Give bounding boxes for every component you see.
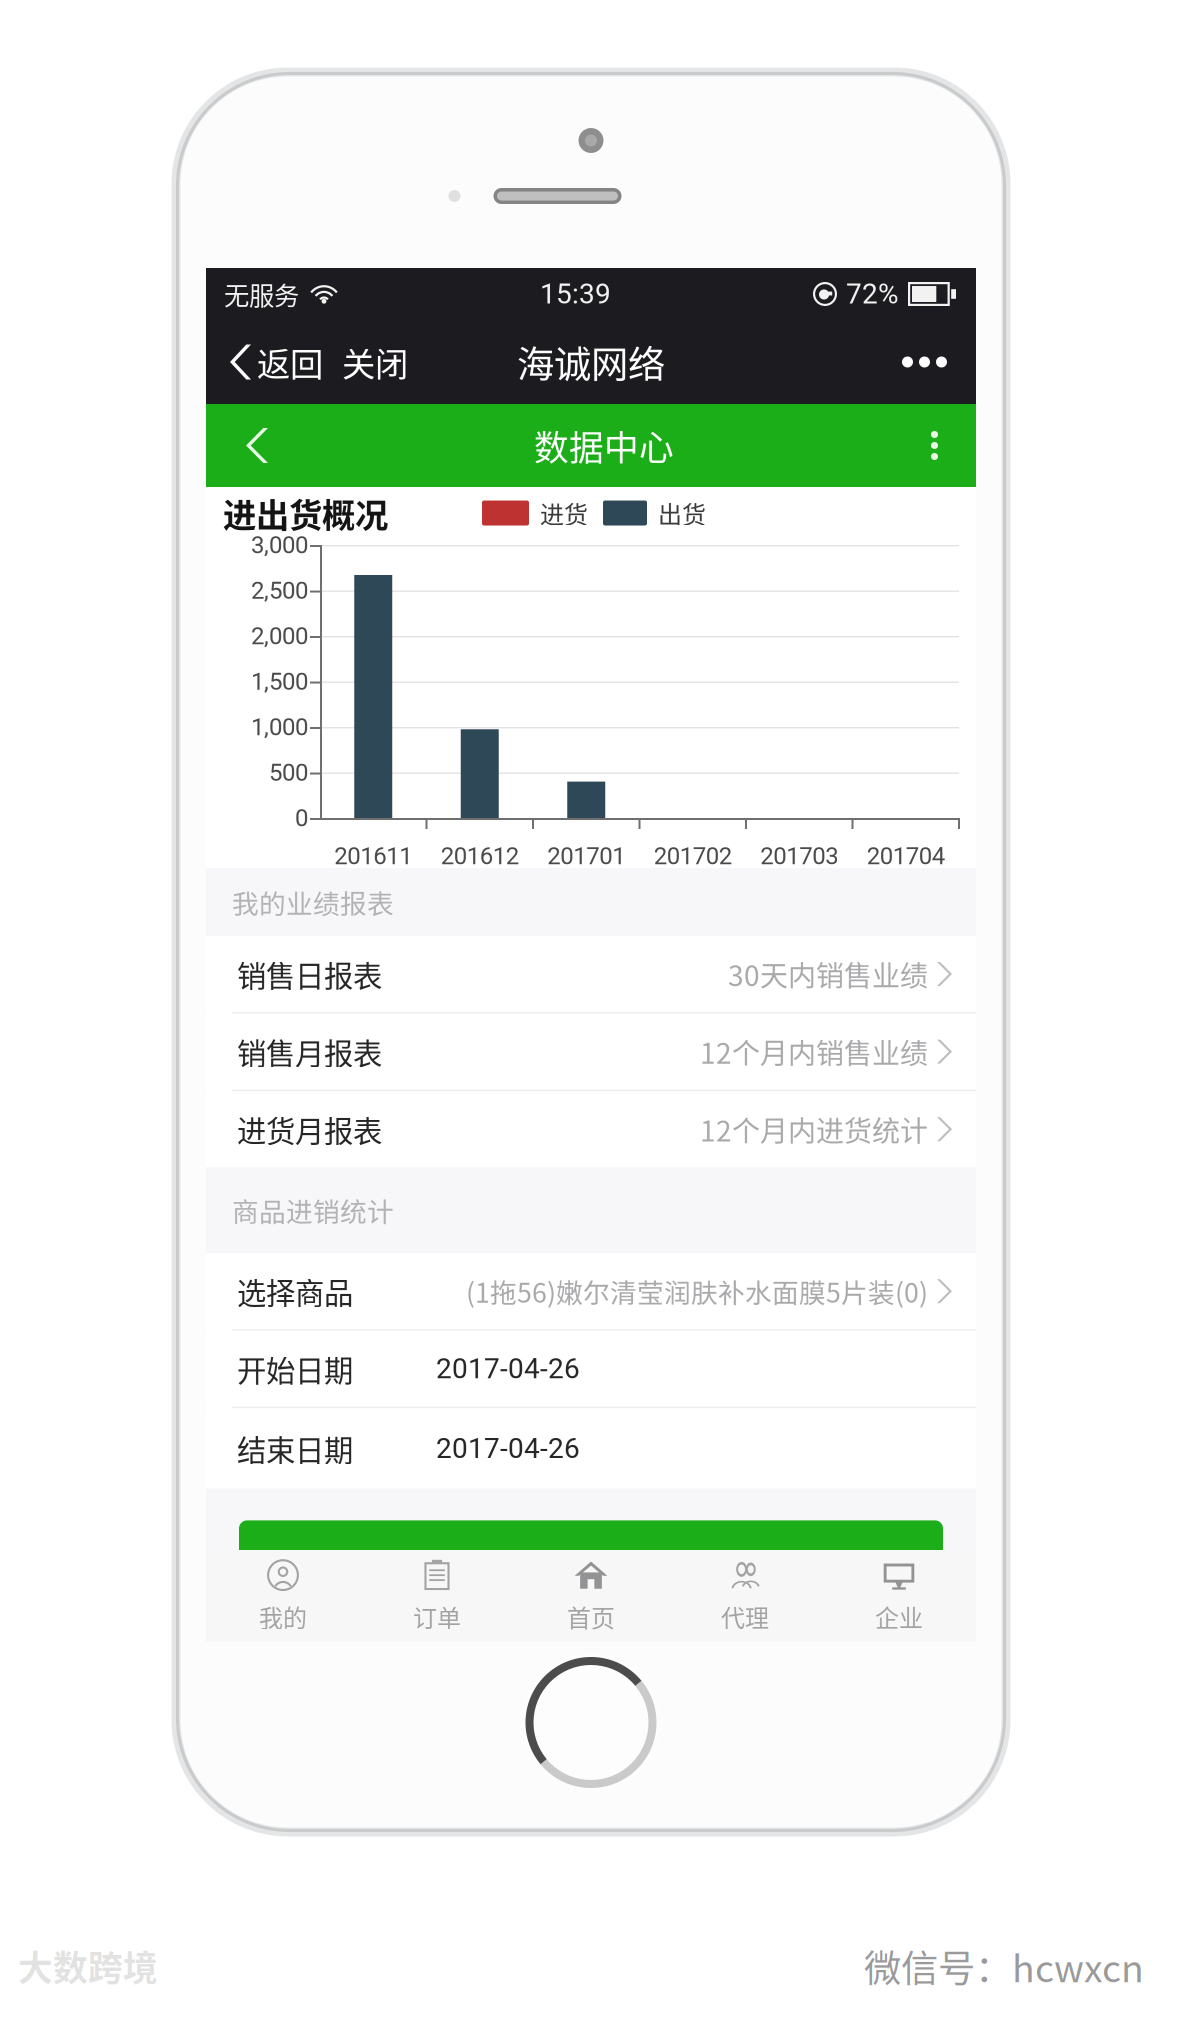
button[interactable]: Back [206,404,294,487]
staticText: 12个月内销售业绩 [700,1031,928,1072]
staticText: 201701 [547,842,625,870]
staticText: 销售日报表 [237,953,382,995]
staticText: 30天内销售业绩 [728,954,928,994]
button[interactable]: 关闭 [333,320,422,404]
staticText: 出货 [658,496,706,530]
button[interactable]: More [873,320,976,404]
staticText: 进货月报表 [237,1108,382,1150]
button[interactable] [206,1520,976,1584]
staticText: 201703 [760,842,838,870]
staticText: 大数跨境 [18,1941,158,1991]
staticText: 我的 [259,1599,307,1634]
staticText: 15:39 [540,278,611,310]
staticText: (1拖56)嫩尔清莹润肤补水面膜5片装(0) [466,1272,928,1310]
button[interactable]: 开始日期 [206,1331,976,1407]
button[interactable]: 返回 [206,320,333,404]
button[interactable]: 销售月报表 [206,1014,976,1090]
staticText: 进出货概况 [223,489,388,537]
staticText: 我的业绩报表 [232,883,394,921]
staticText: 201611 [334,842,412,870]
staticText: 首页 [567,1599,615,1634]
staticText: 2017-04-26 [436,1352,580,1385]
staticText: 开始日期 [237,1348,353,1390]
staticText: 选择商品 [237,1270,353,1312]
button[interactable]: 我的 [206,1550,360,1642]
staticText: 3,000 [251,531,308,559]
button[interactable]: 订单 [360,1550,514,1642]
staticText: 72% [846,278,899,310]
staticText: 返回 [257,338,323,386]
staticText: 12个月内进货统计 [700,1109,928,1149]
staticText: 2,500 [251,576,308,604]
button[interactable]: 代理 [668,1550,822,1642]
staticText: 数据中心 [534,420,674,471]
staticText: 201702 [654,842,732,870]
staticText: 进货 [540,496,588,530]
button[interactable]: Menu [893,404,976,487]
staticText: 201704 [867,842,945,870]
button[interactable]: 企业 [822,1550,976,1642]
staticText: 1,500 [251,667,308,695]
button[interactable]: 进货月报表 [206,1091,976,1167]
staticText: 结束日期 [237,1427,353,1470]
staticText: 微信号：hcwxcn [864,1939,1144,1993]
staticText: 订单 [413,1599,461,1634]
button[interactable]: 首页 [514,1550,668,1642]
button[interactable]: 销售日报表 [206,936,976,1012]
staticText: 企业 [875,1599,923,1634]
staticText: 2017-04-26 [436,1432,580,1465]
staticText: 2,000 [251,622,308,650]
staticText: 500 [269,758,308,786]
staticText: 关闭 [342,338,408,386]
staticText: 商品进销统计 [232,1191,394,1229]
staticText: 销售月报表 [237,1030,382,1073]
staticText: 201612 [441,842,519,870]
staticText: 代理 [721,1599,769,1634]
button[interactable]: 选择商品 [206,1253,976,1329]
staticText: 海诚网络 [517,335,665,389]
button[interactable]: 结束日期 [206,1408,976,1488]
staticText: 0 [295,804,308,832]
staticText: 无服务 [224,276,299,312]
staticText: 1,000 [251,713,308,741]
